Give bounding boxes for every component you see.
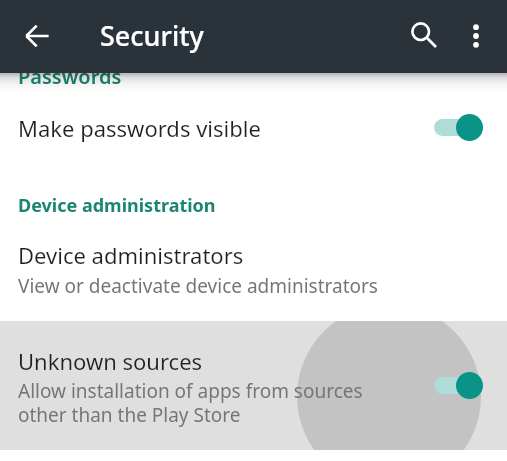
staticText: Allow installation of apps from sources … [18, 378, 363, 427]
button[interactable]: More options [452, 12, 500, 60]
button[interactable]: Device administrators [0, 235, 507, 307]
staticText: Unknown sources [18, 346, 203, 376]
staticText: Passwords [18, 63, 122, 90]
button[interactable]: Unknown sources [0, 321, 507, 450]
staticText: View or deactivate device administrators [18, 273, 378, 299]
button[interactable]: Navigate up [13, 12, 61, 60]
staticText: Device administration [18, 193, 216, 218]
button[interactable]: Unknown sources, on [427, 368, 487, 403]
button[interactable]: Search [400, 11, 448, 59]
staticText: Make passwords visible [18, 113, 261, 143]
staticText: Security [100, 17, 204, 54]
button[interactable]: Make passwords visible, on [427, 110, 487, 145]
staticText: Device administrators [18, 240, 244, 270]
button[interactable]: Make passwords visible [0, 98, 507, 158]
